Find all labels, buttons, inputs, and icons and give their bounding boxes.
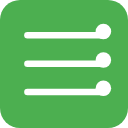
button[interactable]: Task 3 [0,77,128,105]
button[interactable]: Task 2 [0,49,128,77]
button[interactable]: Task 1 [0,21,128,49]
